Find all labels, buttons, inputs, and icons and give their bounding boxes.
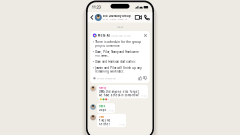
staticText: Oops [99, 108, 106, 112]
button[interactable]: Not helpful [143, 76, 147, 80]
staticText: Nancy [99, 86, 106, 90]
staticText: Pilar, Nancy, Frank, +3 [103, 18, 127, 20]
button[interactable]: Bio 2150 Study Group [88, 12, 152, 23]
staticText: Dave and Frank can start earlier. [95, 60, 136, 63]
staticText: Yikes me neither [99, 119, 111, 126]
staticText: 11:03 [108, 109, 113, 112]
staticText: Dave, Pilar, Nancy and Frank were not aw… [95, 50, 139, 57]
staticText: 11:02 [141, 94, 146, 97]
button[interactable]: Dismiss summary [144, 34, 147, 37]
staticText: There is a check-in for the group projec… [95, 40, 141, 47]
staticText: Frank [99, 104, 105, 108]
staticText: Bio 2150 Study Group [103, 14, 131, 18]
staticText: 3 [108, 98, 109, 101]
staticText: Private Processing [97, 77, 115, 80]
button[interactable]: Helpful [138, 76, 142, 80]
staticText: Today [117, 25, 123, 29]
staticText: visible only to you [111, 34, 130, 37]
staticText: 11:23 [92, 5, 101, 9]
staticText: OMG Did anyone else forget we have a che… [99, 90, 139, 97]
staticText: 11:03 [119, 123, 124, 126]
staticText: Jasmin and Pilar will finish up any rema… [95, 66, 141, 73]
staticText: Dave [99, 115, 104, 118]
staticText: Meta AI [98, 34, 110, 37]
